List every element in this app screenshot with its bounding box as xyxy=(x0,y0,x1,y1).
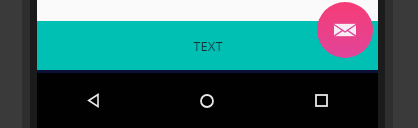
staticText: TEXT xyxy=(193,37,223,55)
button[interactable]: Home xyxy=(150,73,264,128)
button[interactable]: Recent apps xyxy=(264,73,378,128)
button[interactable]: TEXT xyxy=(37,21,378,70)
button[interactable]: Compose message xyxy=(317,2,373,58)
button[interactable]: Back xyxy=(37,73,150,128)
